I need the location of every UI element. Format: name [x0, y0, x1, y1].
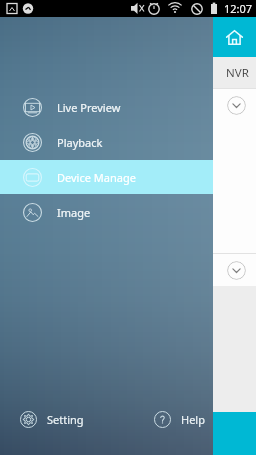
staticText: Device Manage: [57, 170, 136, 185]
button[interactable]: Expand: [227, 261, 246, 280]
button[interactable]: Add device: [0, 412, 256, 455]
button[interactable]: Setting: [20, 411, 84, 428]
button[interactable]: Help: [154, 411, 205, 428]
staticText: NVR: [226, 65, 249, 81]
staticText: Playback: [57, 135, 103, 150]
staticText: Live Preview: [57, 100, 121, 115]
button[interactable]: Device Manage: [0, 160, 213, 194]
button[interactable]: Expand: [227, 96, 246, 115]
button[interactable]: Image: [0, 195, 213, 229]
staticText: Help: [181, 412, 205, 427]
staticText: Setting: [47, 412, 84, 427]
staticText: 12:07: [224, 1, 253, 16]
button[interactable]: Home: [0, 17, 256, 57]
button[interactable]: Playback: [0, 125, 213, 159]
button[interactable]: Live Preview: [0, 90, 213, 124]
staticText: Image: [57, 205, 91, 220]
